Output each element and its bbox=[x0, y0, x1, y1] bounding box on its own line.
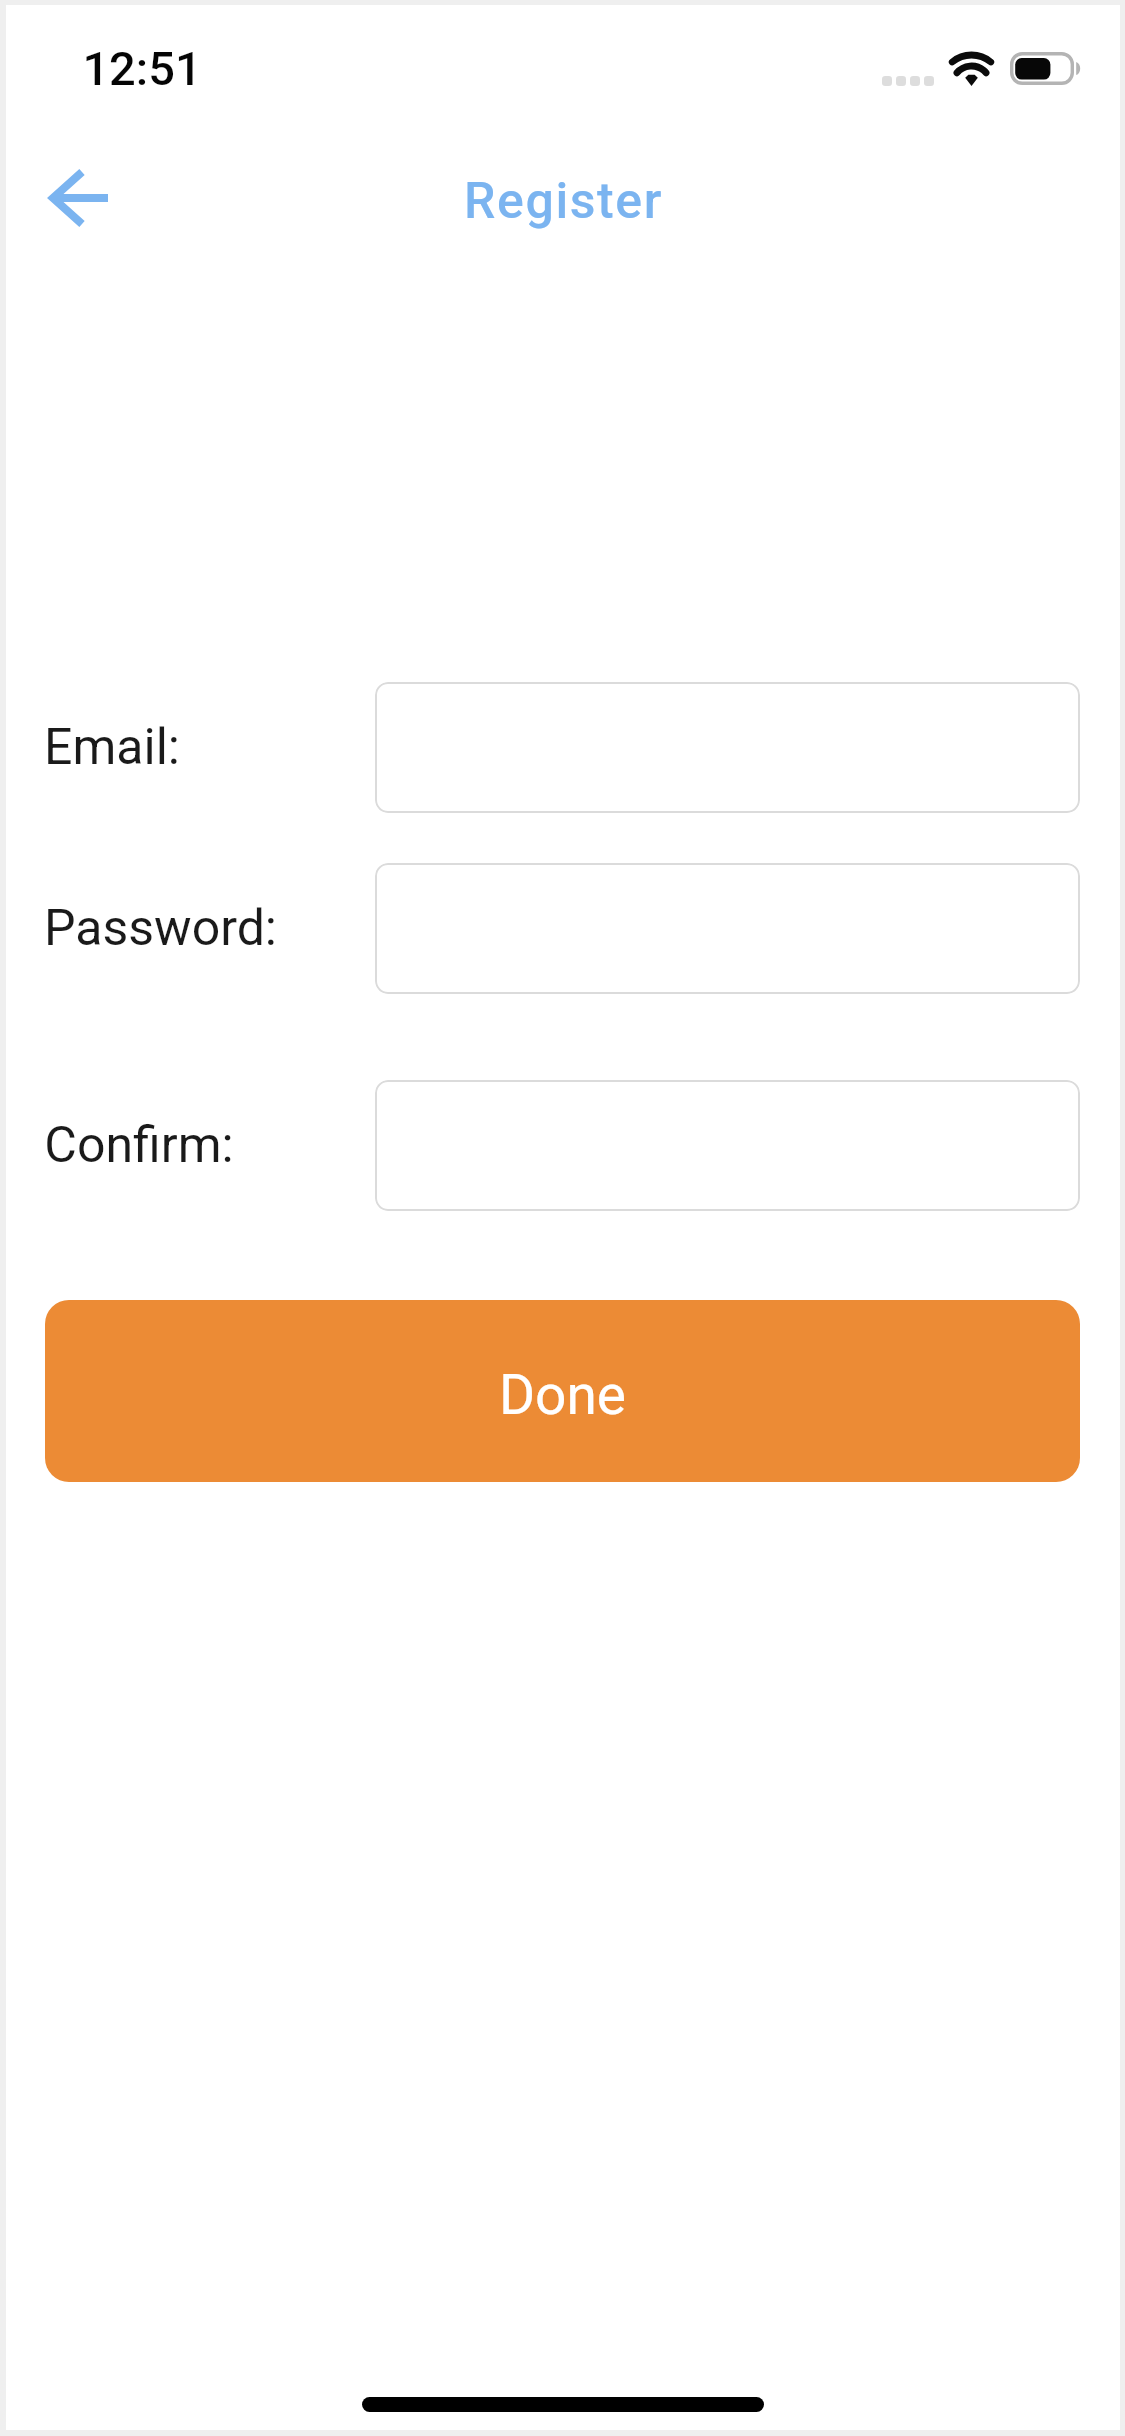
button[interactable]: Email: bbox=[375, 682, 1080, 813]
staticText: 12:51 bbox=[82, 41, 202, 96]
staticText: Done bbox=[499, 1363, 626, 1427]
staticText: Password: bbox=[44, 899, 277, 958]
button[interactable]: Done bbox=[45, 1300, 1080, 1482]
button[interactable]: Password: bbox=[375, 863, 1080, 994]
staticText: Register bbox=[464, 172, 663, 231]
staticText: Confirm: bbox=[44, 1116, 234, 1175]
staticText: Email: bbox=[44, 718, 180, 777]
button[interactable]: Confirm: bbox=[375, 1080, 1080, 1211]
button[interactable]: Back bbox=[18, 149, 148, 249]
